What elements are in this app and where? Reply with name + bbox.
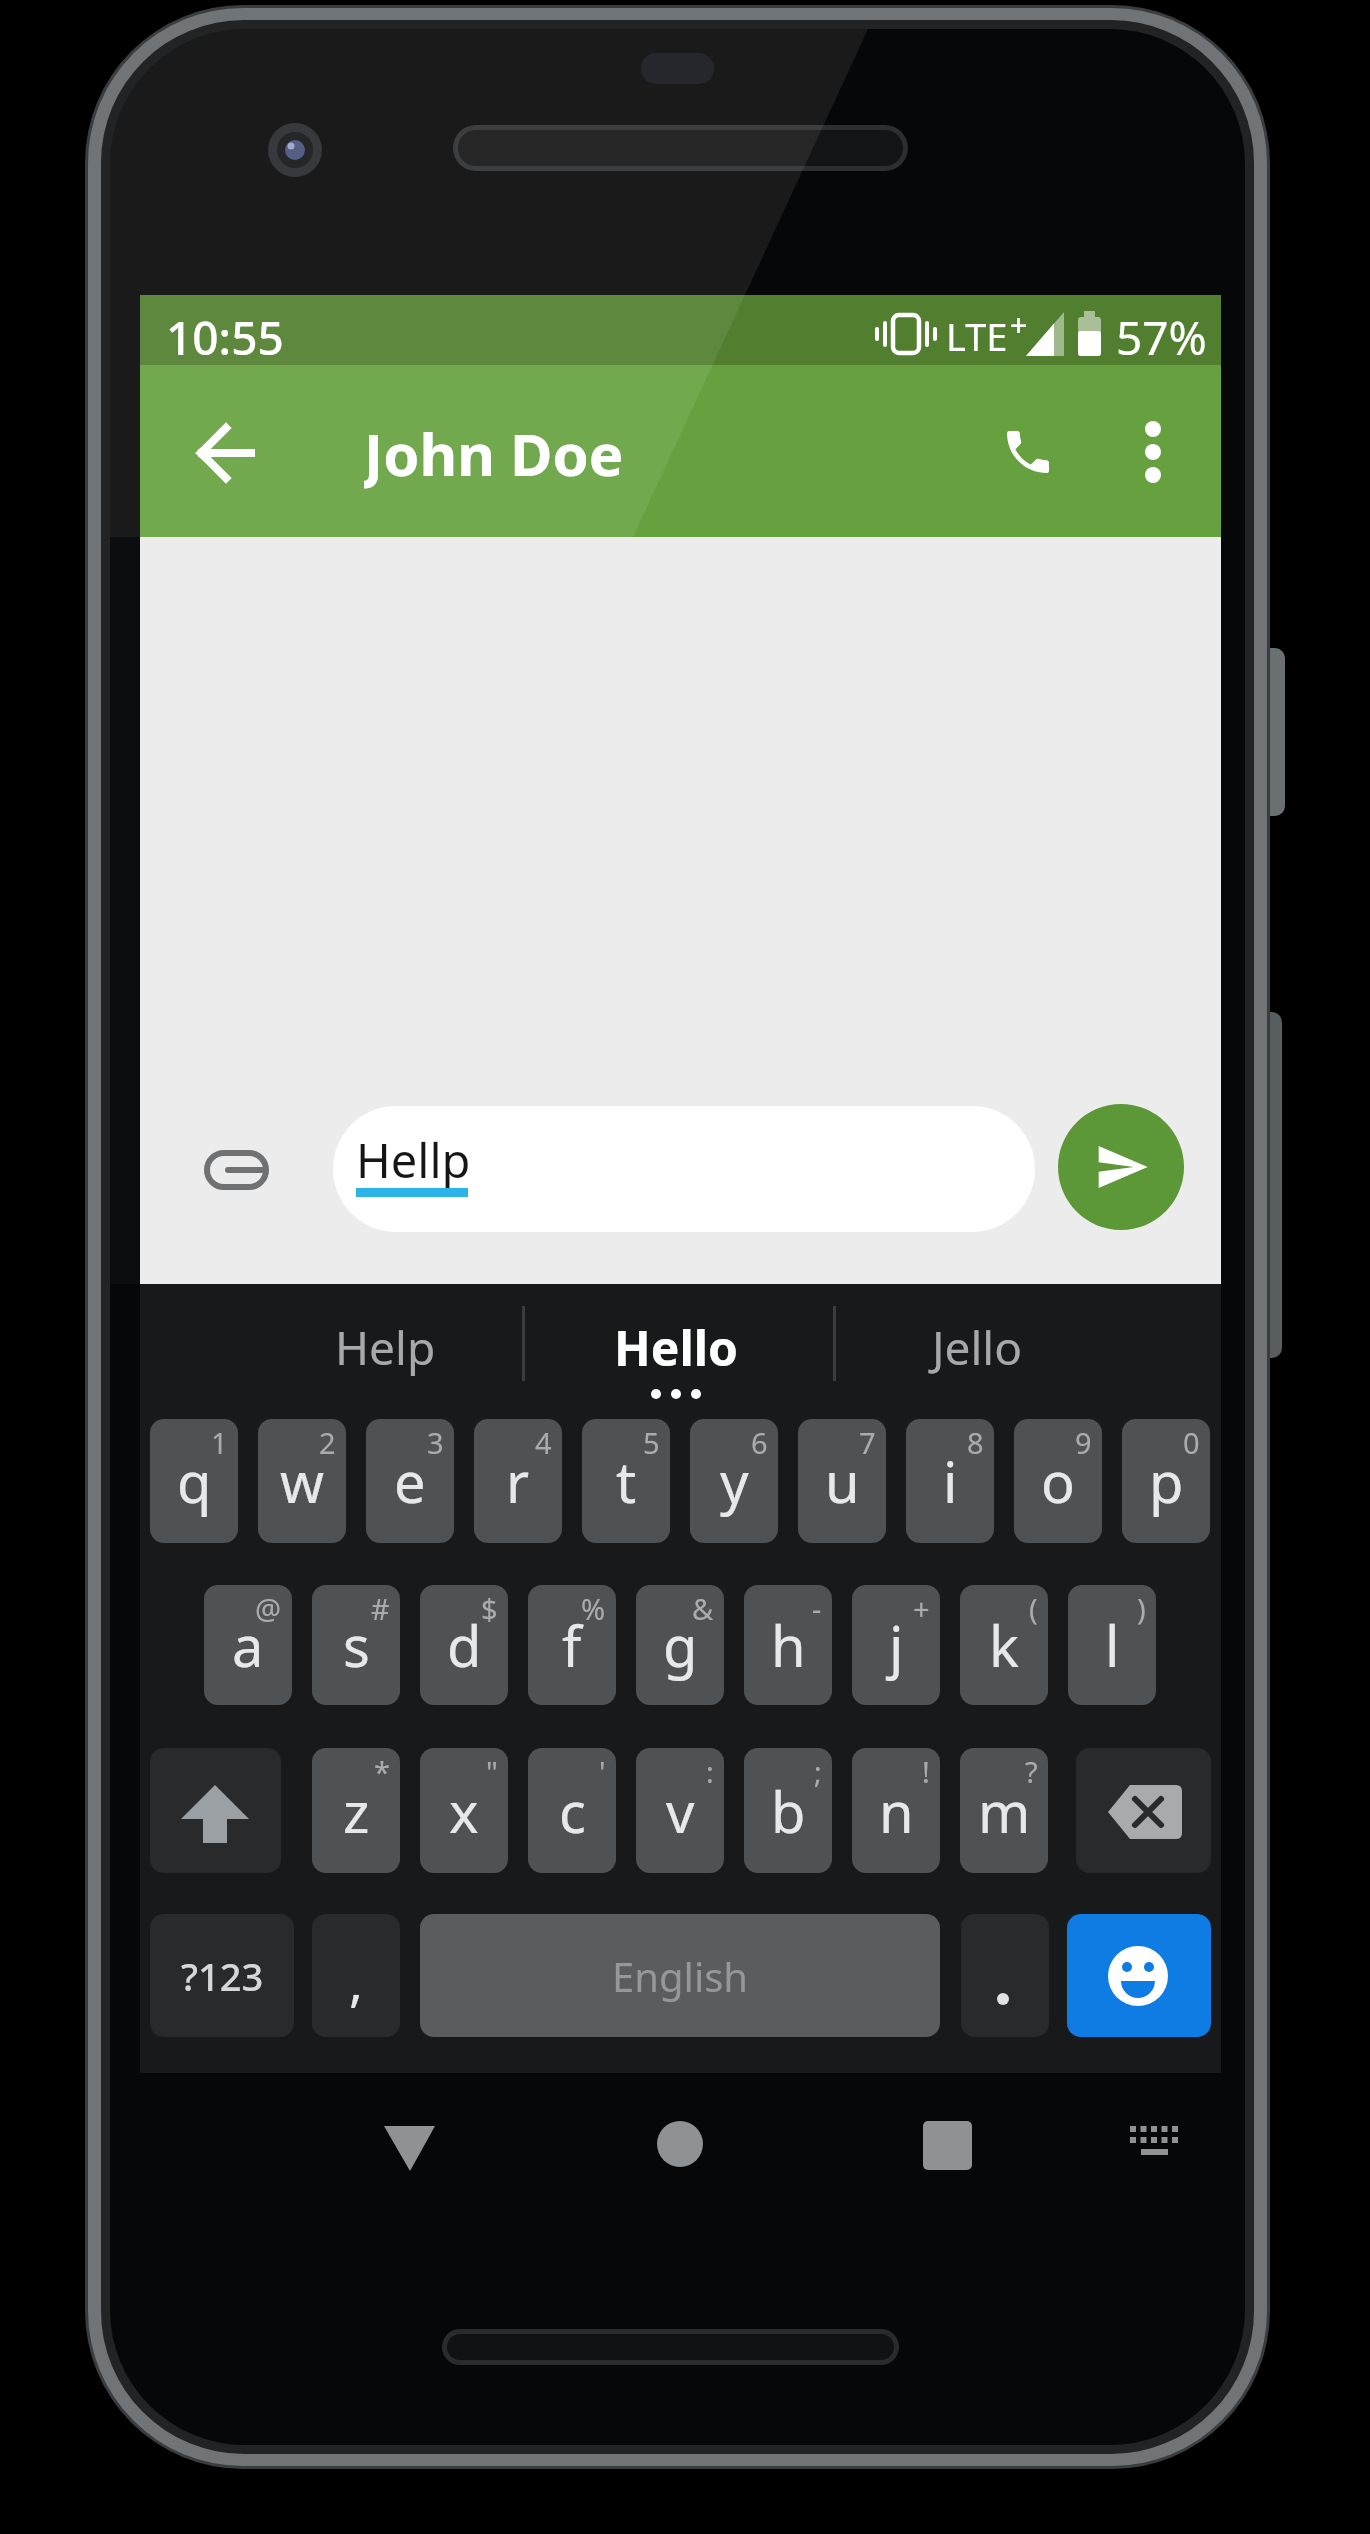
button[interactable]: ' [528,1748,616,1873]
button[interactable]: + [852,1585,940,1705]
button[interactable]: & [636,1585,724,1705]
button[interactable] [190,1130,280,1210]
button[interactable]: # [312,1585,400,1705]
staticText: ' [599,1752,606,1791]
staticText: " [486,1752,498,1791]
button[interactable] [420,1914,940,2037]
staticText: i [943,1443,958,1519]
button[interactable]: 0 [1122,1419,1210,1543]
button[interactable]: * [312,1748,400,1873]
button[interactable]: 8 [906,1419,994,1543]
button[interactable]: $ [420,1585,508,1705]
staticText: Hellp [356,1128,471,1188]
staticText: b [771,1773,806,1849]
button[interactable] [1106,405,1200,499]
staticText: z [343,1773,370,1849]
button[interactable]: @ [204,1585,292,1705]
button[interactable]: : [636,1748,724,1873]
staticText: English [612,1949,749,2003]
button[interactable] [368,2108,452,2186]
staticText: + [913,1589,930,1628]
staticText: & [692,1589,714,1628]
button[interactable]: Jello [857,1313,1097,1381]
staticText: s [343,1607,370,1683]
staticText: c [559,1773,586,1849]
staticText: 9 [1075,1423,1092,1462]
staticText: u [825,1443,860,1519]
button[interactable]: Hellp [333,1106,1035,1232]
staticText: 0 [1183,1423,1200,1462]
staticText: j [889,1607,904,1683]
staticText: f [562,1607,582,1683]
button[interactable]: 4 [474,1419,562,1543]
staticText: 57% [1116,306,1207,362]
button[interactable]: ) [1068,1585,1156,1705]
button[interactable] [1076,1748,1211,1873]
staticText: # [371,1589,390,1628]
staticText: g [663,1607,698,1683]
button[interactable] [1114,2112,1184,2180]
staticText: John Doe [364,414,624,492]
staticText: , [349,1945,363,2016]
button[interactable] [646,2112,714,2180]
staticText: a [232,1607,264,1683]
button[interactable]: % [528,1585,616,1705]
staticText: 2 [319,1423,336,1462]
button[interactable] [981,405,1075,499]
staticText: k [989,1607,1019,1683]
staticText: $ [481,1589,498,1628]
button[interactable]: 3 [366,1419,454,1543]
button[interactable]: Hello [556,1313,796,1381]
staticText: ; [814,1752,822,1791]
staticText: Jello [932,1316,1023,1379]
staticText: Help [335,1316,436,1379]
staticText: w [280,1443,325,1519]
staticText: ! [922,1752,930,1791]
staticText: 1 [211,1423,228,1462]
button[interactable]: 7 [798,1419,886,1543]
staticText: y [720,1443,749,1519]
staticText: ?123 [181,1950,264,2002]
button[interactable] [912,2110,984,2182]
staticText: - [812,1589,822,1628]
staticText: o [1041,1443,1075,1519]
staticText: 4 [535,1423,552,1462]
button[interactable] [1067,1914,1211,2037]
staticText: % [581,1589,606,1628]
button[interactable]: ! [852,1748,940,1873]
staticText: 7 [859,1423,876,1462]
button[interactable]: 5 [582,1419,670,1543]
button[interactable]: " [420,1748,508,1873]
button[interactable]: ? [960,1748,1048,1873]
button[interactable]: 9 [1014,1419,1102,1543]
button[interactable]: 1 [150,1419,238,1543]
staticText: @ [255,1589,282,1628]
staticText: ) [1137,1589,1146,1628]
staticText: r [506,1443,530,1519]
staticText: LTE [946,310,1008,358]
button[interactable] [150,1748,281,1873]
staticText: m [978,1773,1031,1849]
button[interactable] [1058,1104,1184,1230]
button[interactable] [150,1914,294,2037]
staticText: p [1149,1443,1184,1519]
button[interactable]: ; [744,1748,832,1873]
staticText: l [1105,1607,1120,1683]
button[interactable] [312,1914,400,2037]
button[interactable] [178,406,272,500]
button[interactable] [961,1914,1049,2037]
staticText: 8 [967,1423,984,1462]
staticText: n [879,1773,914,1849]
staticText: 3 [427,1423,444,1462]
staticText: 10:55 [166,306,284,362]
staticText: q [177,1443,212,1519]
staticText: * [374,1752,390,1791]
button[interactable]: ( [960,1585,1048,1705]
button[interactable]: 2 [258,1419,346,1543]
staticText: v [666,1773,695,1849]
staticText: + [1010,304,1028,334]
button[interactable]: - [744,1585,832,1705]
button[interactable]: Help [265,1313,505,1381]
staticText: 6 [751,1423,768,1462]
button[interactable]: 6 [690,1419,778,1543]
